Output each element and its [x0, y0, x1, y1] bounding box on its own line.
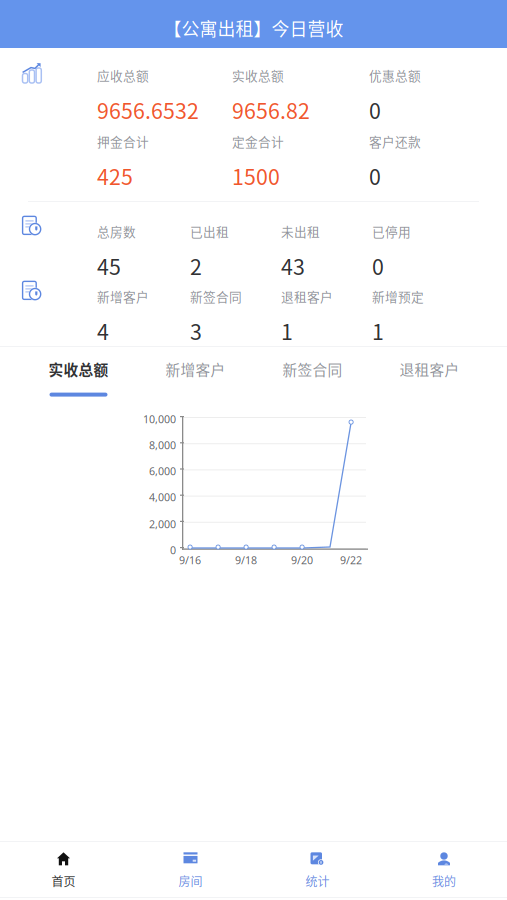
staticText: 2,000 — [149, 517, 176, 531]
button[interactable]: 我的 — [381, 842, 507, 900]
staticText: 退租客户 — [399, 358, 459, 380]
staticText: 8,000 — [149, 438, 176, 452]
button[interactable]: 首页 — [0, 842, 127, 900]
staticText: 4,000 — [149, 490, 176, 504]
staticText: 4 — [97, 315, 109, 346]
button[interactable]: 新签合同 — [254, 352, 371, 402]
staticText: 客户还款 — [369, 132, 421, 150]
staticText: 1500 — [232, 160, 280, 191]
staticText: 9/16 — [179, 553, 201, 567]
staticText: 未出租 — [281, 222, 320, 240]
staticText: 新增客户 — [165, 358, 225, 380]
staticText: 实收总额 — [232, 66, 284, 84]
staticText: 我的 — [432, 872, 456, 890]
staticText: 9/22 — [340, 553, 362, 567]
button[interactable]: 实收总额 — [20, 352, 137, 402]
staticText: 0 — [369, 94, 381, 125]
staticText: 9/18 — [235, 553, 257, 567]
staticText: 1 — [372, 315, 384, 346]
button[interactable]: 统计 — [254, 842, 381, 900]
staticText: 9656.6532 — [97, 94, 199, 125]
staticText: 新增预定 — [372, 287, 424, 305]
staticText: 房间 — [178, 872, 202, 890]
staticText: 2 — [190, 250, 202, 281]
staticText: 已出租 — [190, 222, 229, 240]
staticText: 1 — [281, 315, 293, 346]
staticText: 【公寓出租】今日营收 — [163, 15, 343, 41]
button[interactable]: 新增客户 — [137, 352, 254, 402]
staticText: 应收总额 — [97, 66, 149, 84]
staticText: 6,000 — [149, 464, 176, 478]
staticText: 实收总额 — [48, 358, 108, 380]
staticText: 已停用 — [372, 222, 411, 240]
staticText: 新增客户 — [97, 287, 149, 305]
staticText: 新签合同 — [282, 358, 342, 380]
button[interactable]: 房间 — [127, 842, 254, 900]
staticText: 425 — [97, 160, 133, 191]
staticText: 9656.82 — [232, 94, 310, 125]
staticText: 3 — [190, 315, 202, 346]
staticText: 统计 — [305, 872, 329, 890]
staticText: 新签合同 — [190, 287, 242, 305]
staticText: 总房数 — [97, 222, 136, 240]
staticText: 退租客户 — [281, 287, 333, 305]
staticText: 0 — [372, 250, 384, 281]
staticText: 0 — [170, 543, 176, 557]
staticText: 押金合计 — [97, 132, 149, 150]
staticText: 首页 — [51, 872, 75, 890]
button[interactable]: 退租客户 — [371, 352, 488, 402]
staticText: 9/20 — [291, 553, 313, 567]
staticText: 10,000 — [143, 412, 176, 426]
staticText: 定金合计 — [232, 132, 284, 150]
staticText: 45 — [97, 250, 121, 281]
staticText: 43 — [281, 250, 305, 281]
staticText: 0 — [369, 160, 381, 191]
staticText: 优惠总额 — [369, 66, 421, 84]
